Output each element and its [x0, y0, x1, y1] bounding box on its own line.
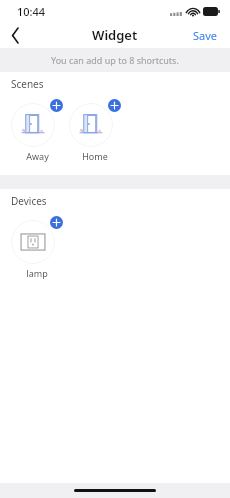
button[interactable]: Save: [189, 25, 222, 46]
staticText: 10:44: [17, 4, 46, 19]
staticText: You can add up to 8 shortcuts.: [51, 54, 179, 66]
other: Add lamp: [50, 216, 63, 229]
staticText: Scenes: [11, 77, 44, 91]
staticText: Home: [82, 150, 108, 162]
button[interactable]: Add Away: [8, 96, 66, 165]
staticText: Save: [193, 28, 218, 43]
staticText: Devices: [11, 194, 47, 208]
staticText: lamp: [26, 267, 48, 279]
other: Add Home: [108, 99, 121, 112]
button[interactable]: Add Home: [66, 96, 124, 165]
button[interactable]: Back: [0, 22, 30, 48]
button[interactable]: Add lamp: [8, 213, 66, 282]
staticText: Widget: [92, 26, 138, 44]
staticText: Away: [26, 150, 49, 162]
other: Add Away: [50, 99, 63, 112]
